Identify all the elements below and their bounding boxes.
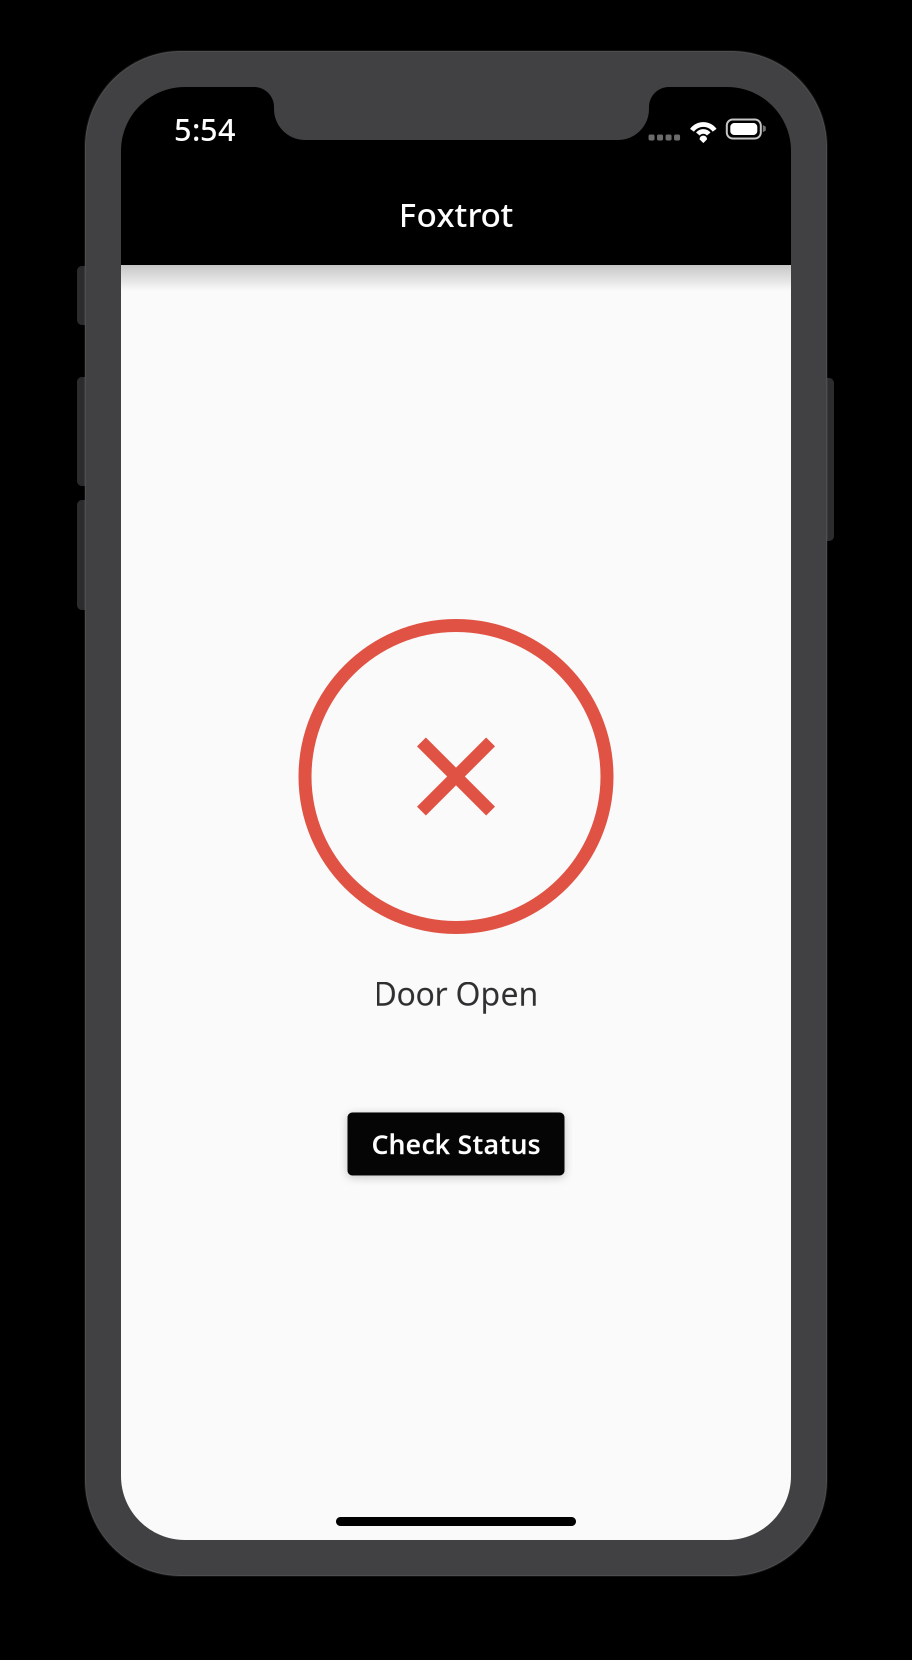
staticText: 5:54 [174,109,236,149]
staticText: Foxtrot [398,192,513,236]
button[interactable]: Check Status [347,1112,564,1175]
staticText: Door Open [373,972,538,1014]
staticText: Check Status [371,1126,540,1162]
